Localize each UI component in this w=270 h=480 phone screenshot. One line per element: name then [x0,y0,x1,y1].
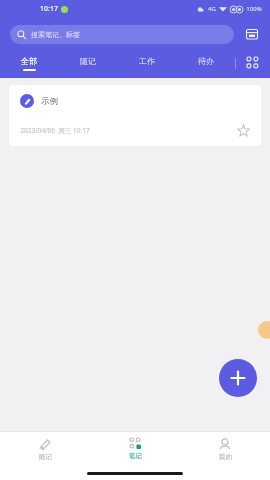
staticText: 待办 [198,56,214,66]
button[interactable]: Add note [219,359,257,397]
button[interactable]: 我的 [180,432,270,466]
button[interactable]: Quick note [258,321,270,339]
staticText: 示例 [41,96,58,107]
staticText: 笔记 [129,452,142,460]
staticText: 2023/04/06 周三 10:17 [20,126,90,135]
staticText: 10:17 [40,4,58,14]
button[interactable]: 随记 [0,432,90,466]
staticText: 工作 [139,56,155,66]
staticText: 100% [246,5,262,13]
button[interactable]: 示例 [9,85,261,146]
button[interactable]: 随记 [58,50,117,76]
button[interactable]: 待办 [176,50,235,76]
staticText: 搜索笔记、标签 [31,30,80,39]
staticText: 随记 [80,56,96,66]
staticText: 随记 [39,453,52,461]
staticText: 4G [208,5,216,13]
button[interactable]: 搜索笔记、标签 [10,25,234,44]
button[interactable]: 工作 [117,50,176,76]
button[interactable]: Calendar [242,24,262,44]
button[interactable]: 全部 [0,50,58,76]
button[interactable]: 笔记 [90,432,180,466]
button[interactable]: Favorite [234,121,252,139]
staticText: 全部 [21,56,37,66]
button[interactable]: Grid view [236,50,270,76]
staticText: 我的 [219,453,232,461]
